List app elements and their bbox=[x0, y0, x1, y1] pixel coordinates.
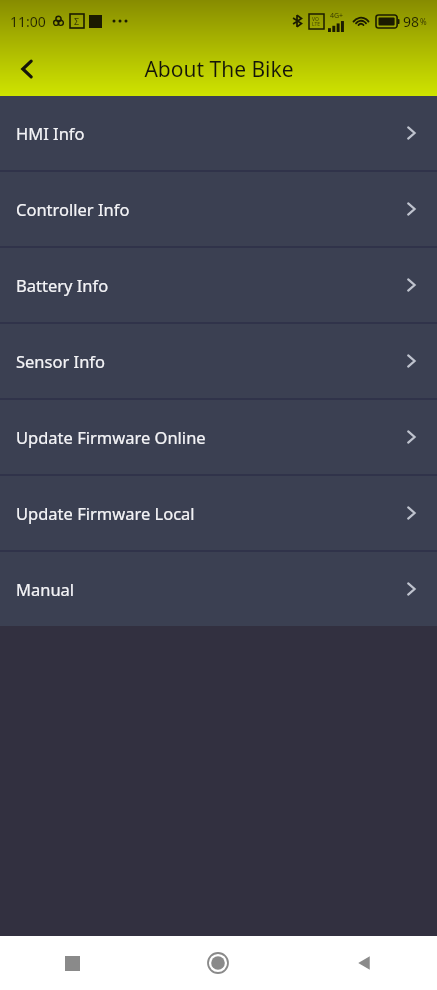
button[interactable]: Controller Info bbox=[0, 172, 437, 246]
button[interactable]: Update Firmware Online bbox=[0, 400, 437, 474]
staticText: About The Bike bbox=[144, 55, 294, 84]
staticText: Σ bbox=[74, 15, 80, 27]
staticText: Battery Info bbox=[16, 274, 109, 296]
button[interactable]: Back bbox=[0, 42, 54, 96]
button[interactable]: Battery Info bbox=[0, 248, 437, 322]
staticText: % bbox=[420, 16, 427, 27]
staticText: Update Firmware Online bbox=[16, 426, 206, 448]
button[interactable]: Update Firmware Local bbox=[0, 476, 437, 550]
button[interactable]: Recent apps bbox=[0, 936, 145, 990]
button[interactable]: Manual bbox=[0, 552, 437, 626]
staticText: 4G+ bbox=[330, 11, 344, 21]
button[interactable]: Sensor Info bbox=[0, 324, 437, 398]
button[interactable]: Back bbox=[291, 936, 437, 990]
staticText: Update Firmware Local bbox=[16, 502, 195, 524]
staticText: 11:00 bbox=[10, 12, 46, 31]
staticText: 98 bbox=[403, 12, 420, 31]
staticText: HMI Info bbox=[16, 122, 85, 144]
button[interactable]: Home bbox=[145, 936, 291, 990]
staticText: VO LTE bbox=[312, 16, 321, 27]
staticText: Manual bbox=[16, 578, 75, 600]
staticText: Sensor Info bbox=[16, 350, 106, 372]
button[interactable]: HMI Info bbox=[0, 96, 437, 170]
staticText: Controller Info bbox=[16, 198, 130, 220]
